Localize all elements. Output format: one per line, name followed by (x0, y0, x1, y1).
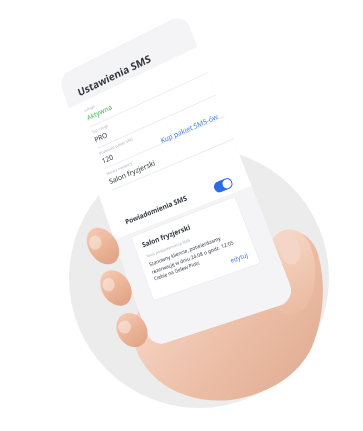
staticText: Nazwa nadawcy (106, 160, 133, 176)
button[interactable]: Nazwa nadawcy (93, 120, 232, 192)
button[interactable]: Pozostało pakiet SMS (86, 98, 223, 171)
staticText: Kup pakiet SMS-ów (159, 112, 220, 146)
staticText: Ustawienia SMS (76, 51, 153, 99)
staticText: Powiadomienia SMS (124, 193, 189, 227)
button[interactable]: usługa (71, 53, 206, 128)
staticText: Typ usługi (91, 123, 109, 134)
staticText: Salon fryzjerski (141, 222, 192, 250)
staticText: Pozostało pakiet SMS (99, 136, 134, 156)
button[interactable]: Typ usługi (78, 76, 215, 150)
button[interactable]: Włącz powiadomienia SMS (212, 176, 234, 194)
staticText: Aktywna (85, 102, 114, 122)
button[interactable]: Salon fryzjerski (130, 195, 261, 302)
staticText: Salon fryzjerski (108, 157, 157, 186)
staticText: Szanowny kliencie, potwierdzamy rezerwac… (148, 228, 246, 281)
staticText: Tekst powiadomienia SMS (145, 238, 191, 259)
staticText: edytuj (229, 251, 249, 265)
staticText: 120 (100, 152, 114, 165)
staticText: usługa (84, 103, 96, 113)
staticText: PRO (93, 129, 109, 144)
button[interactable]: Kup pakiet SMS-ów (156, 108, 224, 150)
